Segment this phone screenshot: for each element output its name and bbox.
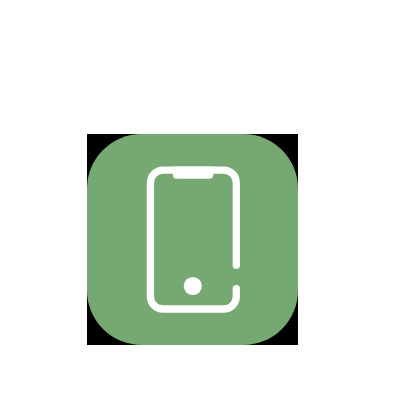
button[interactable]: Phone app launcher icon	[87, 134, 298, 345]
